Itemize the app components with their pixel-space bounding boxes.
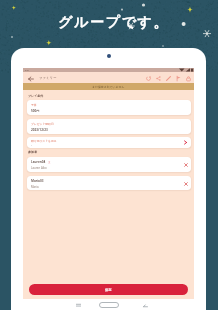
staticText: 参加者	[28, 150, 37, 154]
staticText: 主	[48, 161, 51, 164]
staticText: -	[31, 143, 32, 147]
button[interactable]: Edit	[163, 73, 173, 83]
button[interactable]: Back	[140, 300, 150, 310]
button[interactable]: Open	[182, 139, 189, 146]
staticText: Lauren04	[31, 160, 46, 164]
staticText: プレイ条件	[28, 94, 44, 98]
staticText: プレゼント開始日	[31, 122, 54, 126]
staticText: 保存	[105, 288, 112, 292]
staticText: 9:41	[25, 69, 30, 72]
button[interactable]: 贈り物リストを見る	[27, 137, 191, 148]
staticText: 予算	[31, 103, 37, 107]
staticText: 500円	[31, 109, 40, 113]
button[interactable]: 保存	[29, 284, 188, 295]
button[interactable]: Invite	[173, 73, 183, 83]
button[interactable]: 予算	[27, 100, 191, 115]
button[interactable]: プレゼント開始日	[27, 119, 191, 134]
staticText: ファミリー	[39, 76, 57, 80]
button[interactable]: Home	[98, 300, 120, 310]
button[interactable]: Share	[153, 73, 163, 83]
button[interactable]: History	[143, 73, 153, 83]
staticText: まだ保存されていません	[92, 85, 125, 89]
button[interactable]: Delete	[183, 73, 193, 83]
staticText: Maria03	[31, 179, 44, 183]
staticText: Lauren Aiko	[31, 166, 47, 170]
button[interactable]: Recents	[73, 300, 83, 310]
button[interactable]: Back	[25, 73, 36, 84]
staticText: Maria	[31, 185, 39, 189]
button[interactable]: Remove	[182, 180, 189, 187]
staticText: 2023/12/23	[31, 128, 48, 132]
button[interactable]: Remove	[182, 161, 189, 168]
staticText: 贈り物リストを見る	[31, 139, 57, 143]
button[interactable]: Maria03	[27, 176, 191, 190]
button[interactable]: Lauren04	[27, 157, 191, 172]
staticText: グループです。	[58, 14, 169, 32]
